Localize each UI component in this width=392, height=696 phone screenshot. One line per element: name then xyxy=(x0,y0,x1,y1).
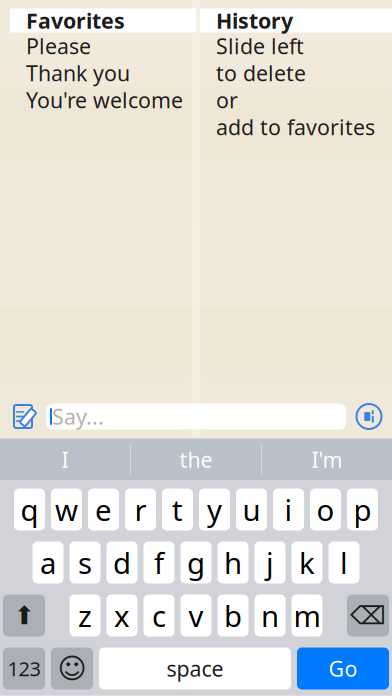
button[interactable]: e xyxy=(88,488,119,530)
button[interactable]: w xyxy=(51,488,82,530)
button[interactable]: s xyxy=(69,541,100,583)
staticText: c xyxy=(152,596,166,635)
staticText: I xyxy=(61,445,68,474)
button[interactable]: v xyxy=(180,594,211,636)
staticText: d xyxy=(113,543,131,582)
button[interactable]: d xyxy=(106,541,137,583)
staticText: the xyxy=(179,445,212,474)
button[interactable]: Slide left xyxy=(200,32,392,59)
button[interactable]: Go xyxy=(297,647,389,689)
button[interactable]: p xyxy=(347,488,378,530)
staticText: r xyxy=(134,490,146,529)
staticText: g xyxy=(187,543,205,582)
button[interactable]: add to favorites xyxy=(200,113,392,140)
staticText: n xyxy=(261,596,279,635)
button[interactable]: You're welcome xyxy=(10,86,196,113)
staticText: v xyxy=(188,596,203,635)
staticText: or xyxy=(216,86,238,114)
button[interactable]: Compose xyxy=(0,401,38,431)
staticText: u xyxy=(242,490,260,529)
button[interactable]: x xyxy=(106,594,137,636)
button[interactable]: Thank you xyxy=(10,59,196,86)
staticText: Please xyxy=(26,32,91,60)
staticText: o xyxy=(316,490,334,529)
staticText: add to favorites xyxy=(216,113,375,141)
button[interactable]: Emoji xyxy=(51,647,93,689)
staticText: m xyxy=(293,596,320,635)
button[interactable]: Shift xyxy=(3,594,45,636)
button[interactable]: y xyxy=(199,488,230,530)
button[interactable]: z xyxy=(69,594,100,636)
button[interactable]: n xyxy=(254,594,285,636)
button[interactable]: o xyxy=(310,488,341,530)
staticText: z xyxy=(78,596,92,635)
staticText: Go xyxy=(328,654,357,683)
staticText: ⌫ xyxy=(350,601,386,630)
button[interactable]: f xyxy=(143,541,174,583)
button[interactable]: j xyxy=(254,541,285,583)
button[interactable]: l xyxy=(328,541,359,583)
button[interactable]: q xyxy=(14,488,45,530)
staticText: to delete xyxy=(216,59,306,87)
staticText: space xyxy=(166,654,223,683)
button[interactable]: Please xyxy=(10,32,196,59)
staticText: b xyxy=(224,596,242,635)
staticText: f xyxy=(154,543,164,582)
staticText: ☺ xyxy=(57,653,86,684)
staticText: e xyxy=(95,490,112,529)
button[interactable]: b xyxy=(217,594,248,636)
staticText: j xyxy=(266,543,274,582)
button[interactable]: Speak xyxy=(354,401,392,431)
staticText: 123 xyxy=(7,655,40,682)
staticText: ⬆ xyxy=(13,601,34,630)
button[interactable]: I xyxy=(0,438,130,480)
staticText: Say... xyxy=(52,402,104,431)
staticText: a xyxy=(40,543,56,582)
button[interactable]: u xyxy=(236,488,267,530)
button[interactable]: t xyxy=(162,488,193,530)
button[interactable]: i xyxy=(273,488,304,530)
button[interactable]: g xyxy=(180,541,211,583)
staticText: Favorites xyxy=(26,6,125,35)
button[interactable]: the xyxy=(131,438,261,480)
staticText: k xyxy=(299,543,315,582)
staticText: I'm xyxy=(311,445,342,474)
staticText: p xyxy=(353,490,371,529)
staticText: t xyxy=(172,490,183,529)
staticText: Slide left xyxy=(216,32,304,60)
staticText: Thank you xyxy=(26,59,130,87)
staticText: i xyxy=(284,490,292,529)
button[interactable]: a xyxy=(32,541,63,583)
staticText: q xyxy=(20,490,38,529)
staticText: w xyxy=(55,490,78,529)
button[interactable]: I'm xyxy=(262,438,392,480)
button[interactable]: Say... xyxy=(38,403,354,429)
button[interactable]: 123 xyxy=(3,647,45,689)
staticText: h xyxy=(224,543,242,582)
staticText: y xyxy=(207,490,222,529)
staticText: History xyxy=(216,6,293,35)
staticText: x xyxy=(114,596,130,635)
button[interactable]: space xyxy=(99,647,291,689)
button[interactable]: or xyxy=(200,86,392,113)
button[interactable]: k xyxy=(291,541,322,583)
button[interactable]: c xyxy=(143,594,174,636)
button[interactable]: r xyxy=(125,488,156,530)
staticText: l xyxy=(340,543,348,582)
button[interactable]: to delete xyxy=(200,59,392,86)
button[interactable]: Delete xyxy=(347,594,389,636)
button[interactable]: h xyxy=(217,541,248,583)
button[interactable]: m xyxy=(291,594,322,636)
staticText: s xyxy=(78,543,92,582)
staticText: You're welcome xyxy=(26,86,183,114)
